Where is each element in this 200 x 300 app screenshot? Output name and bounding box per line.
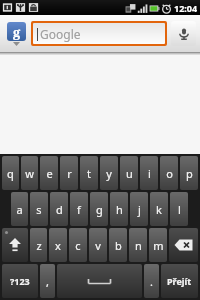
button[interactable]: b — [109, 228, 127, 262]
staticText: j — [138, 202, 141, 217]
staticText: ?123 — [10, 275, 30, 287]
button[interactable]: g — [90, 192, 108, 226]
button[interactable]: m — [149, 228, 167, 262]
button[interactable]: v — [89, 228, 107, 262]
button[interactable]: Google — [33, 23, 165, 44]
button[interactable]: z — [30, 228, 47, 262]
staticText: n — [135, 238, 142, 253]
staticText: v — [95, 238, 101, 253]
button[interactable]: w — [21, 156, 38, 190]
staticText: c — [75, 238, 81, 253]
staticText: Přejít — [167, 275, 192, 287]
button[interactable]: a — [11, 192, 28, 226]
staticText: y — [106, 166, 112, 181]
button[interactable]: f — [70, 192, 88, 226]
staticText: f — [77, 202, 81, 217]
button[interactable]: Voice search — [171, 21, 196, 46]
staticText: b — [115, 238, 122, 253]
button[interactable]: . — [144, 264, 159, 298]
staticText: l — [178, 202, 181, 217]
button[interactable]: d — [50, 192, 68, 226]
button[interactable]: s — [30, 192, 48, 226]
button[interactable]: h — [110, 192, 128, 226]
button[interactable]: o — [160, 156, 178, 190]
button[interactable]: Delete — [169, 228, 198, 262]
button[interactable]: n — [129, 228, 147, 262]
staticText: , — [46, 274, 49, 289]
button[interactable]: e — [40, 156, 58, 190]
button[interactable]: Přejít — [161, 264, 198, 298]
button[interactable]: t — [80, 156, 98, 190]
staticText: h — [116, 202, 123, 217]
staticText: s — [36, 202, 42, 217]
staticText: p — [186, 166, 193, 181]
staticText: x — [55, 238, 61, 253]
staticText: o — [166, 166, 173, 181]
staticText: . — [150, 274, 153, 289]
staticText: z — [36, 238, 42, 253]
button[interactable]: y — [100, 156, 118, 190]
button[interactable]: Shift — [2, 228, 28, 262]
staticText: t — [87, 166, 91, 181]
staticText: a — [16, 202, 23, 217]
staticText: g — [96, 202, 103, 217]
button[interactable]: p — [180, 156, 198, 190]
staticText: r — [67, 166, 72, 181]
staticText: w — [25, 166, 34, 181]
button[interactable]: Search source — [4, 22, 28, 46]
button[interactable]: ?123 — [2, 264, 38, 298]
button[interactable]: r — [60, 156, 78, 190]
button[interactable]: x — [49, 228, 67, 262]
staticText: g — [13, 23, 21, 41]
staticText: d — [56, 202, 63, 217]
button[interactable]: k — [150, 192, 168, 226]
staticText: q — [7, 166, 14, 181]
button[interactable]: q — [2, 156, 19, 190]
staticText: m — [153, 238, 164, 253]
button[interactable]: j — [130, 192, 148, 226]
staticText: Google — [40, 26, 81, 42]
staticText: k — [156, 202, 162, 217]
button[interactable]: , — [40, 264, 55, 298]
button[interactable]: Space — [57, 264, 142, 298]
button[interactable]: c — [69, 228, 87, 262]
button[interactable]: i — [140, 156, 158, 190]
staticText: e — [46, 166, 53, 181]
button[interactable]: l — [170, 192, 188, 226]
staticText: i — [148, 166, 151, 181]
staticText: u — [126, 166, 133, 181]
button[interactable]: u — [120, 156, 138, 190]
staticText: 12:04 — [174, 2, 198, 14]
